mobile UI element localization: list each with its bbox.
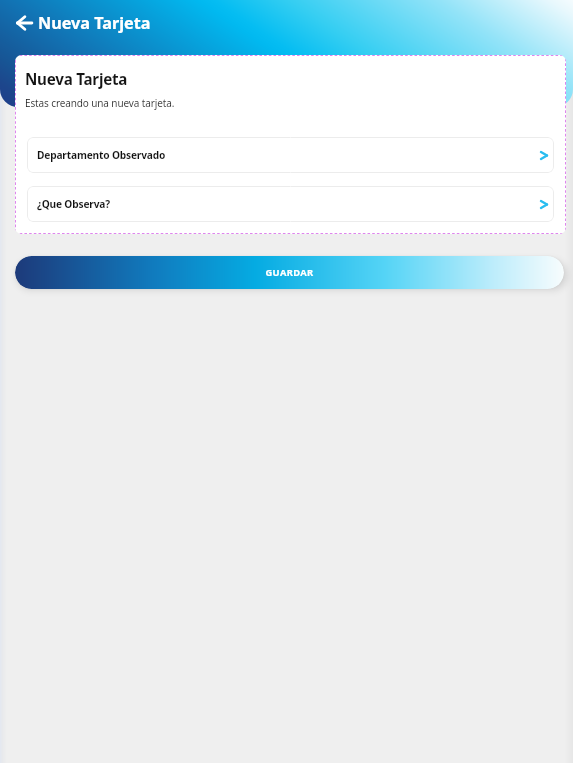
staticText: Estas creando una nueva tarjeta. xyxy=(25,96,175,110)
staticText: Nueva Tarjeta xyxy=(38,12,151,34)
staticText: GUARDAR xyxy=(265,266,314,279)
button[interactable]: ¿Que Observa? xyxy=(27,186,554,222)
button[interactable]: GUARDAR xyxy=(15,256,564,289)
staticText: Departamento Observado xyxy=(37,148,166,162)
button[interactable]: Departamento Observado xyxy=(27,137,554,173)
button[interactable]: Back xyxy=(16,15,33,31)
staticText: Nueva Tarjeta xyxy=(25,69,128,90)
staticText: ¿Que Observa? xyxy=(37,197,110,211)
